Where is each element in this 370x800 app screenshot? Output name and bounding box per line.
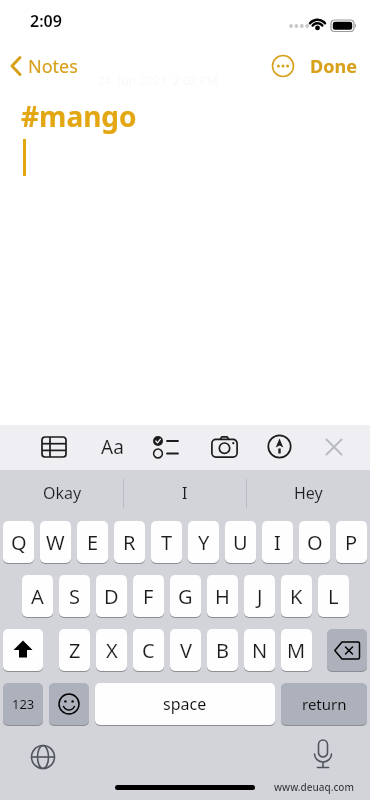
staticText: space bbox=[163, 693, 207, 715]
staticText: W bbox=[46, 529, 65, 556]
staticText: I bbox=[182, 482, 188, 504]
button[interactable] bbox=[324, 437, 344, 457]
staticText: H bbox=[215, 583, 230, 610]
staticText: D bbox=[104, 583, 119, 610]
staticText: Notes bbox=[28, 54, 78, 79]
staticText: Q bbox=[11, 529, 27, 556]
button[interactable]: U bbox=[225, 521, 256, 563]
staticText: R bbox=[123, 529, 136, 556]
staticText: X bbox=[106, 637, 118, 664]
staticText: G bbox=[178, 583, 193, 610]
staticText: S bbox=[69, 583, 80, 610]
button[interactable]: Okay bbox=[10, 478, 114, 508]
button[interactable]: D bbox=[96, 575, 127, 617]
staticText: P bbox=[345, 529, 358, 556]
button[interactable]: W bbox=[40, 521, 71, 563]
staticText: T bbox=[161, 529, 173, 556]
staticText: I bbox=[274, 529, 281, 556]
button[interactable]: Y bbox=[188, 521, 219, 563]
staticText: L bbox=[328, 583, 339, 610]
button[interactable]: Notes bbox=[4, 50, 96, 82]
button[interactable]: J bbox=[244, 575, 275, 617]
button[interactable]: G bbox=[170, 575, 201, 617]
button[interactable]: Done bbox=[306, 50, 360, 82]
button[interactable]: N bbox=[244, 629, 275, 671]
button[interactable]: V bbox=[170, 629, 201, 671]
staticText: K bbox=[290, 583, 303, 610]
button[interactable]: P bbox=[336, 521, 367, 563]
staticText: Z bbox=[69, 637, 81, 664]
staticText: Aa bbox=[101, 434, 124, 460]
button[interactable]: H bbox=[207, 575, 238, 617]
staticText: F bbox=[143, 583, 154, 610]
button[interactable]: 123 bbox=[3, 683, 43, 725]
button[interactable]: O bbox=[299, 521, 330, 563]
button[interactable] bbox=[41, 435, 67, 459]
staticText: N bbox=[252, 637, 268, 664]
button[interactable]: space bbox=[95, 683, 275, 725]
button[interactable] bbox=[49, 683, 89, 725]
button[interactable]: X bbox=[96, 629, 127, 671]
staticText: V bbox=[180, 637, 192, 664]
staticText: 2:09 bbox=[30, 10, 62, 32]
button[interactable]: L bbox=[318, 575, 349, 617]
staticText: www.deuaq.com bbox=[274, 780, 354, 794]
button[interactable]: M bbox=[281, 629, 312, 671]
button[interactable] bbox=[310, 738, 336, 776]
button[interactable] bbox=[152, 435, 180, 459]
button[interactable]: I bbox=[262, 521, 293, 563]
button[interactable]: R bbox=[114, 521, 145, 563]
button[interactable]: S bbox=[59, 575, 90, 617]
button[interactable]: F bbox=[133, 575, 164, 617]
staticText: O bbox=[307, 529, 323, 556]
staticText: #mango bbox=[21, 97, 137, 135]
button[interactable] bbox=[327, 629, 367, 671]
staticText: Y bbox=[198, 529, 210, 556]
staticText: B bbox=[216, 637, 229, 664]
staticText: C bbox=[142, 637, 155, 664]
button[interactable]: Aa bbox=[94, 432, 130, 462]
button[interactable]: return bbox=[281, 683, 367, 725]
button[interactable]: E bbox=[77, 521, 108, 563]
button[interactable]: T bbox=[151, 521, 182, 563]
staticText: U bbox=[233, 529, 248, 556]
staticText: J bbox=[257, 583, 263, 610]
button[interactable]: K bbox=[281, 575, 312, 617]
button[interactable]: Z bbox=[59, 629, 90, 671]
staticText: M bbox=[287, 637, 306, 664]
button[interactable] bbox=[3, 629, 43, 671]
staticText: A bbox=[31, 583, 44, 610]
staticText: E bbox=[87, 529, 99, 556]
button[interactable] bbox=[28, 742, 58, 772]
staticText: Hey bbox=[294, 482, 323, 504]
staticText: Done bbox=[310, 54, 357, 79]
button[interactable] bbox=[267, 434, 292, 459]
button[interactable] bbox=[211, 436, 238, 458]
button[interactable]: Hey bbox=[256, 478, 360, 508]
button[interactable]: Q bbox=[3, 521, 34, 563]
staticText: Okay bbox=[43, 482, 82, 504]
staticText: return bbox=[302, 694, 347, 714]
button[interactable]: I bbox=[133, 478, 237, 508]
button[interactable]: C bbox=[133, 629, 164, 671]
button[interactable] bbox=[270, 53, 296, 79]
button[interactable]: B bbox=[207, 629, 238, 671]
button[interactable]: A bbox=[22, 575, 53, 617]
staticText: 123 bbox=[12, 695, 35, 713]
